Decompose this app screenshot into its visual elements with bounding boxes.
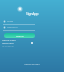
button[interactable]: Forgot pass? xyxy=(2,39,16,42)
staticText: Forgot pass? xyxy=(2,39,16,42)
button[interactable]: Create account xyxy=(24,63,40,66)
button[interactable]: Sign In xyxy=(4,33,35,38)
staticText: Create account xyxy=(24,63,40,66)
staticText: Email xyxy=(7,20,13,23)
staticText: SignApp xyxy=(26,12,39,16)
staticText: Sign In xyxy=(16,34,24,37)
staticText: Remember xyxy=(2,42,14,45)
staticText: Password xyxy=(7,26,18,29)
button[interactable]: Remember xyxy=(2,42,14,45)
staticText: or continue xyxy=(2,45,14,48)
